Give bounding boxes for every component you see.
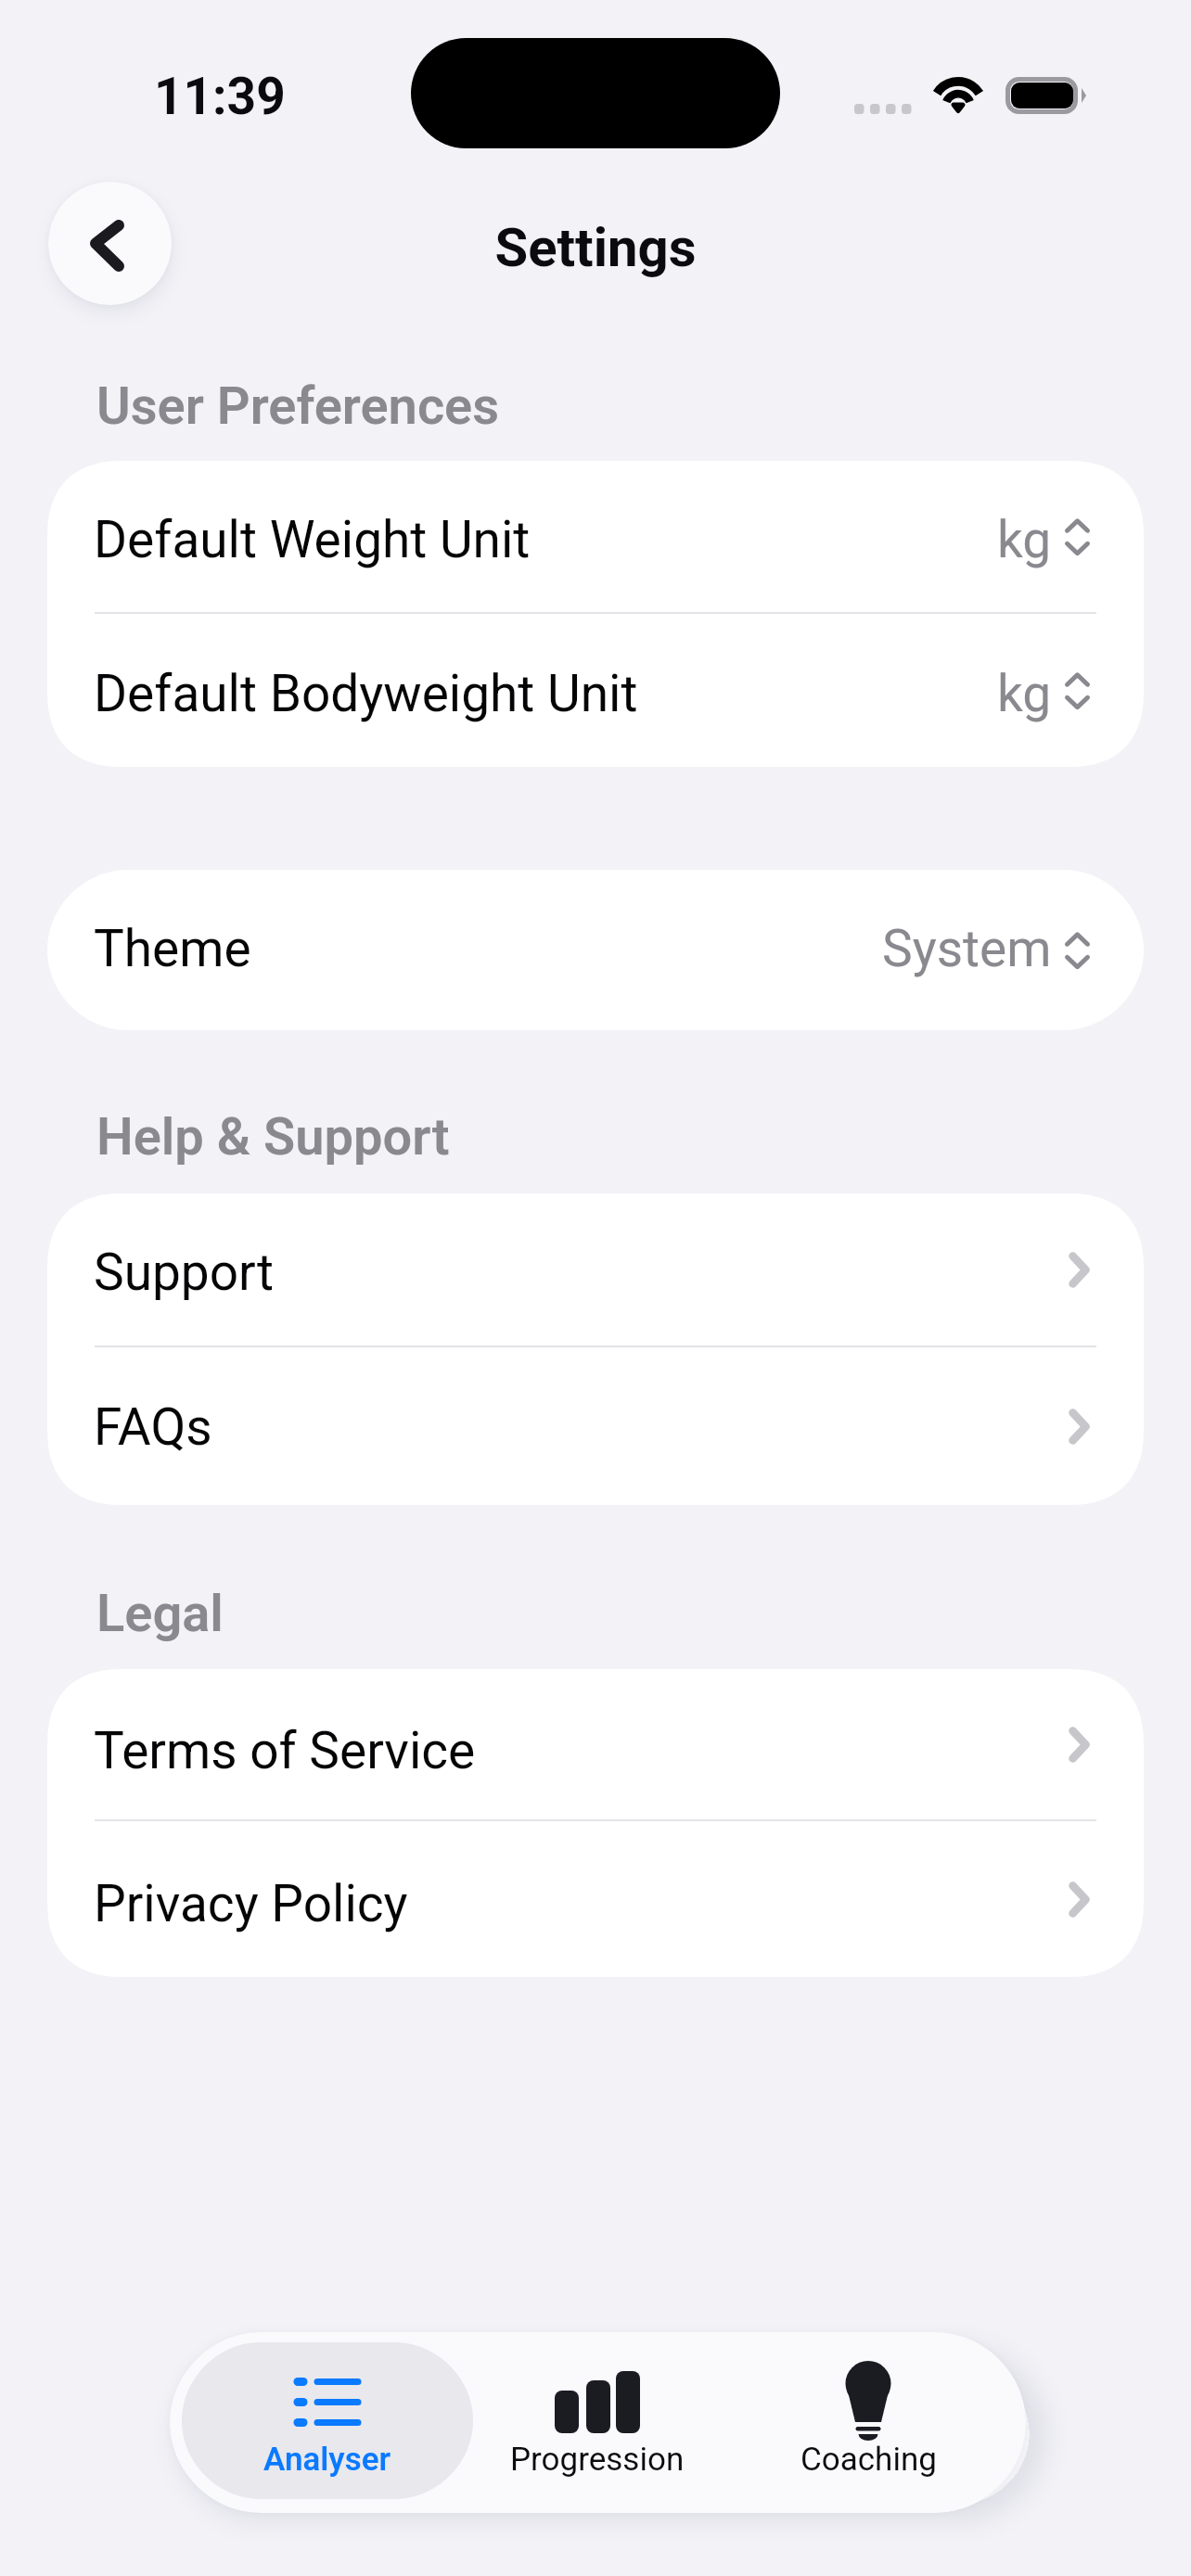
button[interactable]: Back (48, 182, 172, 305)
staticText: kg (997, 664, 1052, 723)
staticText: Coaching (800, 2441, 937, 2479)
staticText: Settings (0, 216, 1191, 279)
button[interactable]: FAQs (47, 1347, 1144, 1505)
button[interactable]: Analyser (182, 2342, 473, 2499)
staticText: Progression (510, 2441, 685, 2479)
staticText: Theme (94, 919, 251, 978)
staticText: FAQs (94, 1397, 212, 1457)
staticText: Terms of Service (94, 1721, 476, 1780)
staticText: Legal (96, 1583, 224, 1644)
staticText: Support (94, 1243, 275, 1302)
button[interactable]: Support (47, 1193, 1144, 1345)
staticText: Privacy Policy (94, 1874, 408, 1933)
staticText: Analyser (263, 2441, 391, 2479)
button[interactable]: Default Weight Unit (47, 461, 1144, 612)
staticText: User Preferences (96, 376, 500, 437)
staticText: Default Weight Unit (94, 510, 531, 569)
staticText: System (882, 919, 1052, 978)
staticText: 11:39 (154, 67, 286, 126)
button[interactable]: Privacy Policy (47, 1821, 1144, 1977)
button[interactable]: Progression (463, 2342, 732, 2499)
button[interactable]: Coaching (734, 2342, 1003, 2499)
staticText: Default Bodyweight Unit (94, 664, 638, 723)
button[interactable]: Terms of Service (47, 1669, 1144, 1819)
button[interactable]: Theme (47, 870, 1144, 1030)
staticText: kg (997, 510, 1052, 569)
button[interactable]: Default Bodyweight Unit (47, 614, 1144, 767)
staticText: Help & Support (96, 1106, 450, 1167)
